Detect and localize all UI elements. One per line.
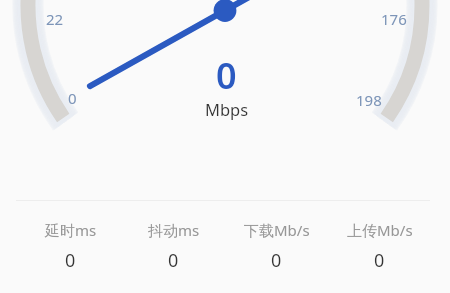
staticText: 上传Mb/s	[347, 220, 413, 240]
staticText: 抖动ms	[148, 220, 200, 240]
staticText: 22	[46, 9, 64, 29]
button[interactable]: 延时ms	[19, 220, 122, 273]
staticText: 0	[168, 248, 179, 273]
staticText: 0	[68, 88, 77, 108]
staticText: 0	[65, 248, 76, 273]
staticText: 0	[216, 51, 237, 100]
button[interactable]: Start speed test	[0, 0, 450, 190]
button[interactable]: 抖动ms	[122, 220, 225, 273]
button[interactable]: 下载Mb/s	[225, 220, 328, 273]
staticText: 0	[374, 248, 385, 273]
button[interactable]: 上传Mb/s	[328, 220, 431, 273]
staticText: 下载Mb/s	[244, 220, 310, 240]
staticText: 延时ms	[45, 220, 97, 240]
staticText: 176	[381, 9, 407, 29]
staticText: Mbps	[205, 98, 249, 120]
staticText: 0	[271, 248, 282, 273]
staticText: 198	[356, 90, 382, 110]
